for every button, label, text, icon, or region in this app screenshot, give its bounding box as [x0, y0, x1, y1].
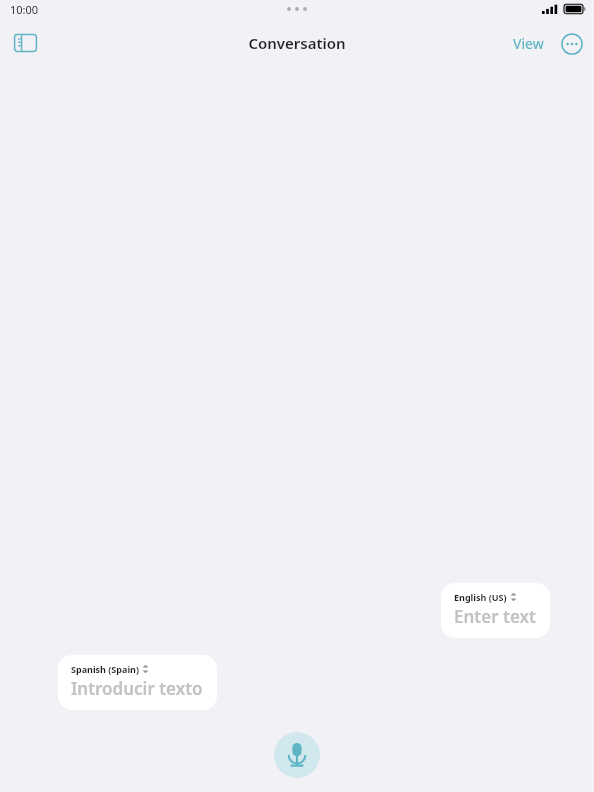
staticText: Conversation	[248, 33, 346, 53]
button[interactable]: View	[507, 28, 550, 59]
button[interactable]: Record speech	[274, 732, 320, 778]
staticText: 10:00	[10, 2, 39, 17]
staticText: View	[513, 34, 544, 53]
staticText: Enter text	[454, 605, 536, 628]
staticText: Introducir texto	[71, 677, 203, 700]
button[interactable]: English (US)	[441, 583, 594, 792]
staticText: English (US)	[454, 591, 507, 603]
button[interactable]: Show sidebar	[8, 28, 42, 58]
button[interactable]: Spanish (Spain)	[58, 655, 594, 792]
staticText: Spanish (Spain)	[71, 663, 139, 675]
button[interactable]: More options	[558, 30, 586, 58]
